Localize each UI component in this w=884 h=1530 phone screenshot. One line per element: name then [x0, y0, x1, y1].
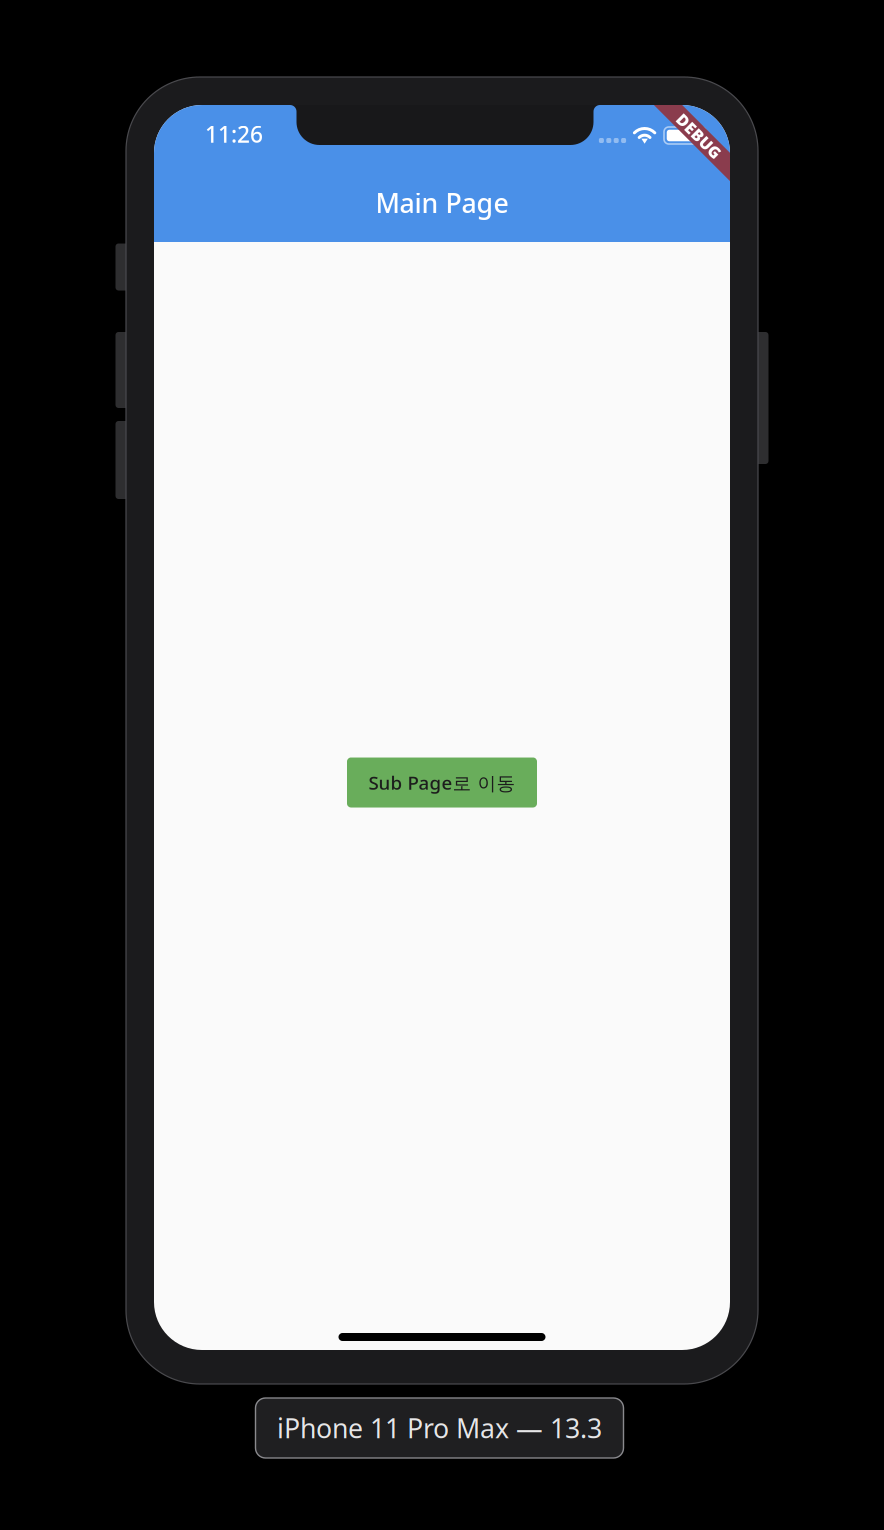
- staticText: DEBUG: [671, 125, 727, 147]
- staticText: Sub Page로 이동: [368, 770, 515, 795]
- staticText: 11:26: [205, 119, 263, 149]
- button[interactable]: Sub Page로 이동: [347, 757, 537, 807]
- staticText: iPhone 11 Pro Max — 13.3: [277, 1410, 602, 1446]
- staticText: Main Page: [375, 185, 508, 220]
